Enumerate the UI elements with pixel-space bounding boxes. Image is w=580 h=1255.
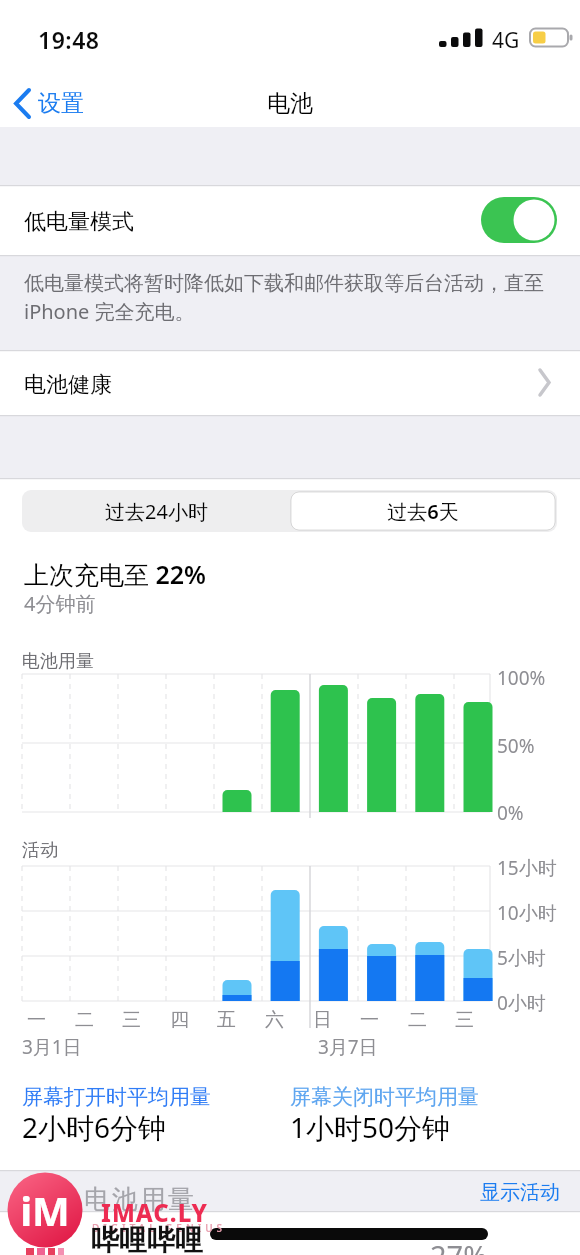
staticText: 过去24小时 bbox=[105, 498, 208, 525]
staticText: 设置 bbox=[38, 89, 84, 118]
staticText: 50% bbox=[497, 733, 535, 759]
button[interactable]: 过去6天 bbox=[291, 492, 555, 530]
staticText: 0小时 bbox=[497, 990, 546, 1016]
staticText: 1小时50分钟 bbox=[290, 1108, 451, 1146]
staticText: iM bbox=[20, 1183, 70, 1237]
staticText: 三 bbox=[455, 1008, 474, 1032]
staticText: DIGITAL GENIUS bbox=[92, 1221, 227, 1235]
staticText: 电池 bbox=[267, 89, 313, 118]
button[interactable] bbox=[8, 84, 103, 122]
staticText: 2小时6分钟 bbox=[22, 1108, 167, 1146]
staticText: 四 bbox=[170, 1008, 189, 1032]
staticText: iPhone 完全充电。 bbox=[24, 298, 195, 325]
staticText: 5小时 bbox=[497, 945, 546, 971]
staticText: 活动 bbox=[22, 839, 58, 862]
staticText: 哔哩哔哩 bbox=[91, 1223, 203, 1255]
staticText: 日 bbox=[313, 1008, 332, 1032]
button[interactable]: 显示活动 bbox=[470, 1175, 570, 1209]
staticText: 五 bbox=[217, 1008, 236, 1032]
staticText: 100% bbox=[497, 665, 546, 691]
staticText: 屏幕打开时平均用量 bbox=[22, 1084, 211, 1110]
staticText: 低电量模式 bbox=[24, 208, 134, 236]
staticText: 一 bbox=[27, 1008, 46, 1032]
staticText: 19:48 bbox=[38, 24, 100, 55]
staticText: 二 bbox=[75, 1008, 94, 1032]
staticText: 10小时 bbox=[497, 900, 557, 926]
staticText: 二 bbox=[408, 1008, 427, 1032]
staticText: 27% bbox=[430, 1236, 488, 1255]
staticText: 电池用量 bbox=[22, 650, 94, 673]
staticText: 过去6天 bbox=[387, 498, 459, 525]
staticText: 显示活动 bbox=[480, 1180, 560, 1205]
staticText: 六 bbox=[265, 1008, 284, 1032]
staticText: 4G bbox=[492, 26, 520, 55]
staticText: 一 bbox=[360, 1008, 379, 1032]
staticText: 低电量模式将暂时降低如下载和邮件获取等后台活动，直至 bbox=[24, 271, 544, 296]
staticText: 0% bbox=[497, 800, 524, 826]
staticText: 15小时 bbox=[497, 855, 557, 881]
staticText: 三 bbox=[122, 1008, 141, 1032]
staticText: 屏幕关闭时平均用量 bbox=[290, 1084, 479, 1110]
staticText: 4分钟前 bbox=[24, 590, 96, 617]
staticText: 3月1日 bbox=[22, 1034, 82, 1060]
staticText: 电池健康 bbox=[24, 371, 112, 399]
button[interactable]: 电池健康 bbox=[0, 351, 580, 414]
staticText: 上次充电至 22% bbox=[24, 557, 206, 591]
staticText: 3月7日 bbox=[318, 1034, 378, 1060]
button[interactable]: 低电量模式 bbox=[0, 186, 580, 254]
staticText: 电池用量 bbox=[83, 1183, 195, 1216]
staticText: IMAC.LY bbox=[101, 1196, 209, 1229]
button[interactable]: 过去24小时 bbox=[24, 492, 289, 530]
